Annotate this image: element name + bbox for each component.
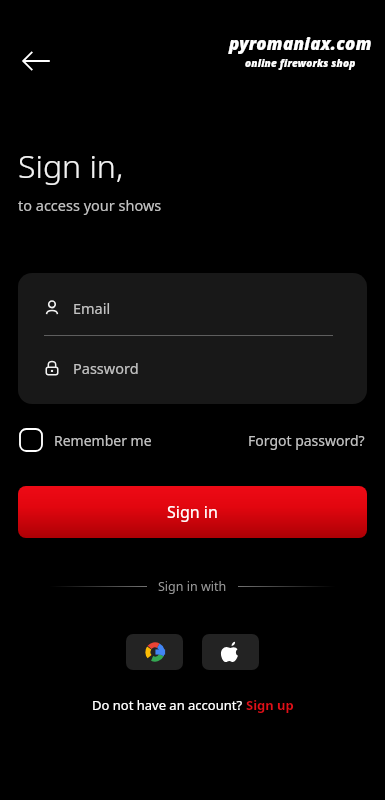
staticText: Do not have an account? bbox=[92, 696, 246, 714]
staticText: pyromaniax.com bbox=[229, 32, 372, 55]
staticText: Sign in, bbox=[18, 144, 124, 188]
staticText: Password bbox=[73, 358, 139, 378]
button[interactable]: Sign in bbox=[18, 486, 367, 538]
staticText: Sign in with bbox=[158, 578, 227, 595]
button[interactable]: Remember me bbox=[20, 429, 152, 451]
button[interactable]: Forgot password? bbox=[248, 431, 365, 450]
staticText: to access your shows bbox=[18, 195, 162, 215]
button[interactable]: Back bbox=[13, 38, 59, 84]
staticText: Sign up bbox=[246, 696, 294, 714]
button[interactable]: Sign in with Google bbox=[126, 634, 183, 670]
staticText: online fireworks shop bbox=[245, 56, 356, 70]
staticText: Email bbox=[73, 298, 111, 318]
staticText: Sign in bbox=[167, 501, 218, 523]
staticText: Forgot password? bbox=[248, 431, 365, 450]
button[interactable]: Do not have an account? bbox=[0, 696, 385, 714]
button[interactable]: Password bbox=[44, 353, 341, 383]
button[interactable]: Email bbox=[44, 293, 341, 323]
staticText: Remember me bbox=[54, 431, 152, 450]
button[interactable]: Sign in with Apple bbox=[202, 634, 259, 670]
